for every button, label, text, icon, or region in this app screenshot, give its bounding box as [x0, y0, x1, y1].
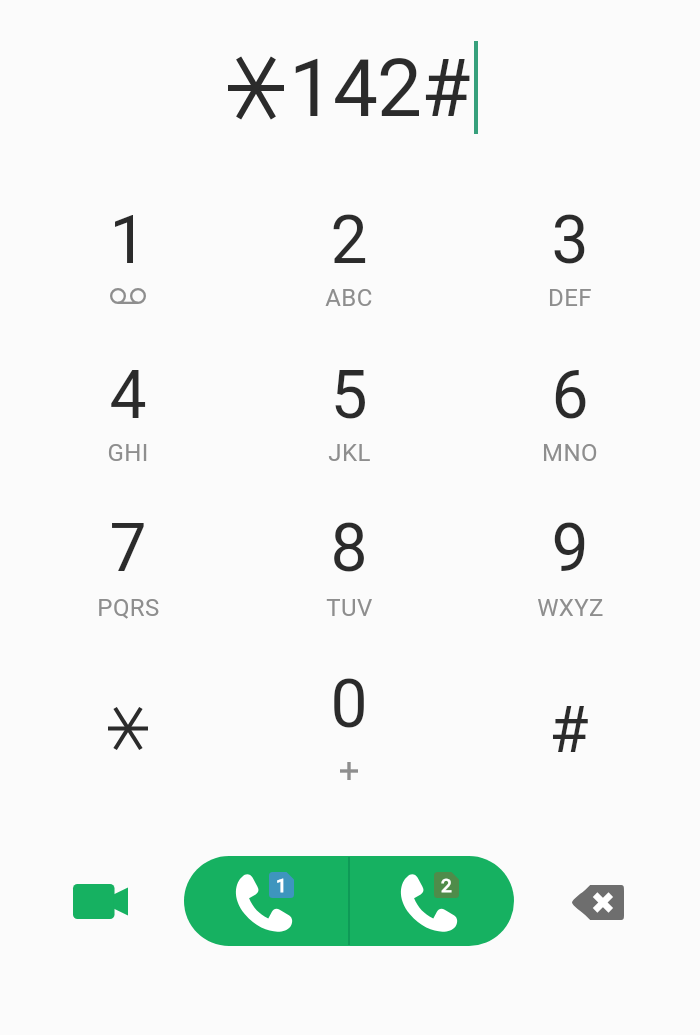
staticText: 2 — [441, 874, 452, 896]
staticText: ABC — [325, 284, 373, 312]
staticText: # — [549, 693, 589, 763]
staticText: PQRS — [97, 594, 160, 622]
staticText: 1 — [109, 202, 147, 279]
button[interactable]: Key 5 — [239, 337, 459, 492]
staticText: GHI — [107, 439, 149, 467]
button[interactable]: Call with SIM 1 — [184, 856, 349, 946]
button[interactable]: Key 9 — [460, 490, 680, 645]
staticText: 9 — [551, 510, 589, 587]
button[interactable]: Key 0 — [239, 646, 459, 801]
staticText: TUV — [326, 594, 373, 622]
staticText: 1 — [276, 874, 287, 896]
staticText: DEF — [548, 284, 592, 312]
button[interactable]: Key 7 — [18, 490, 238, 645]
button[interactable]: Key 8 — [239, 490, 459, 645]
button[interactable]: Key 1 — [18, 182, 238, 337]
staticText: 4 — [109, 357, 147, 434]
staticText: JKL — [328, 439, 371, 467]
button[interactable]: Delete — [560, 864, 636, 940]
button[interactable]: Key 6 — [460, 337, 680, 492]
staticText: MNO — [542, 439, 598, 467]
button[interactable]: Key * — [18, 646, 238, 801]
button[interactable]: Call with SIM 2 — [349, 856, 514, 946]
button[interactable]: Key 3 — [460, 182, 680, 337]
staticText: 142# — [289, 42, 470, 136]
staticText: WXYZ — [537, 594, 604, 622]
staticText: 8 — [330, 510, 368, 587]
staticText: 2 — [330, 202, 368, 279]
staticText: 0 — [330, 666, 368, 743]
staticText: 5 — [330, 357, 368, 434]
staticText: 6 — [551, 357, 589, 434]
button[interactable]: Video call — [61, 862, 139, 940]
button[interactable]: Key # — [460, 646, 680, 801]
button[interactable]: Key 2 — [239, 182, 459, 337]
staticText: 7 — [109, 510, 147, 587]
button[interactable]: Key 4 — [18, 337, 238, 492]
staticText: 3 — [551, 202, 589, 279]
